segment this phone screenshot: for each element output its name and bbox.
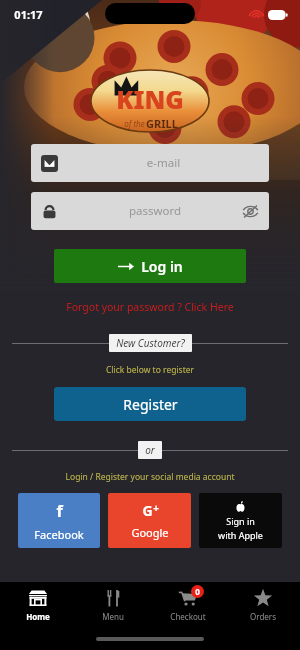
staticText: Sign in [226, 515, 255, 527]
staticText: of the [123, 118, 146, 129]
staticText: Google [131, 525, 169, 540]
button[interactable]: Log in [54, 249, 246, 283]
staticText: Orders [250, 611, 276, 622]
staticText: G [142, 501, 153, 520]
staticText: Home [26, 611, 50, 622]
button[interactable]: Orders [225, 582, 300, 628]
staticText: Log in [141, 257, 183, 276]
button[interactable]: password [31, 192, 269, 230]
button[interactable]: Home [0, 582, 75, 628]
staticText: with Apple [218, 529, 263, 541]
button[interactable]: Sign in [199, 493, 282, 548]
staticText: Checkout [170, 611, 206, 622]
staticText: Login / Register your social media accou… [0, 471, 300, 483]
button[interactable]: f [18, 493, 100, 548]
staticText: Click below to register [0, 364, 300, 376]
staticText: 0 [195, 586, 200, 597]
staticText: e-mail [68, 155, 259, 171]
button[interactable]: Checkout [150, 582, 225, 628]
staticText: f [56, 500, 63, 522]
staticText: or [145, 443, 155, 457]
button[interactable]: Register [54, 387, 246, 421]
button[interactable]: e-mail [31, 144, 269, 182]
staticText: 01:17 [14, 7, 43, 22]
staticText: New Customer? [116, 336, 185, 350]
staticText: password [68, 203, 242, 219]
button[interactable]: G [108, 493, 191, 548]
staticText: Facebook [34, 527, 84, 542]
button[interactable]: Forgot your password ? Click Here [0, 300, 300, 314]
staticText: GRILL [146, 116, 178, 131]
button[interactable]: Menu [75, 582, 150, 628]
staticText: Menu [102, 611, 124, 622]
staticText: + [153, 501, 159, 515]
staticText: KING [116, 82, 184, 116]
staticText: Register [123, 395, 178, 414]
